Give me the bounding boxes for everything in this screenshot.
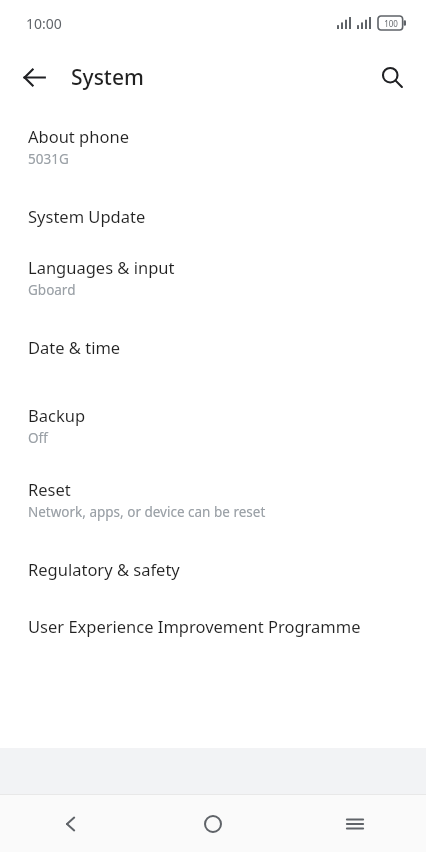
button[interactable]: Regulatory & safety [0,547,426,591]
staticText: Off [28,429,48,447]
button[interactable]: About phone [0,120,426,172]
button[interactable]: Home [142,795,284,852]
staticText: Network, apps, or device can be reset [28,503,266,521]
staticText: Backup [28,404,86,426]
button[interactable]: Languages & input [0,251,426,303]
button[interactable]: Back [12,55,56,99]
staticText: Reset [28,478,71,500]
staticText: 5031G [28,150,69,168]
staticText: 100 [384,18,398,29]
staticText: Date & time [28,336,121,358]
button[interactable]: User Experience Improvement Programme [0,604,426,648]
button[interactable]: Search [370,55,414,99]
button[interactable]: Reset [0,473,426,525]
staticText: System Update [28,205,146,227]
staticText: User Experience Improvement Programme [28,615,361,637]
staticText: About phone [28,125,129,147]
button[interactable]: Date & time [0,325,426,369]
button[interactable]: Back [0,795,142,852]
staticText: Gboard [28,281,76,299]
button[interactable]: System Update [0,194,426,238]
staticText: 10:00 [26,14,62,33]
staticText: System [71,63,144,92]
staticText: Regulatory & safety [28,558,180,580]
button[interactable]: Backup [0,399,426,451]
staticText: Languages & input [28,256,175,278]
button[interactable]: Recent apps [284,795,426,852]
